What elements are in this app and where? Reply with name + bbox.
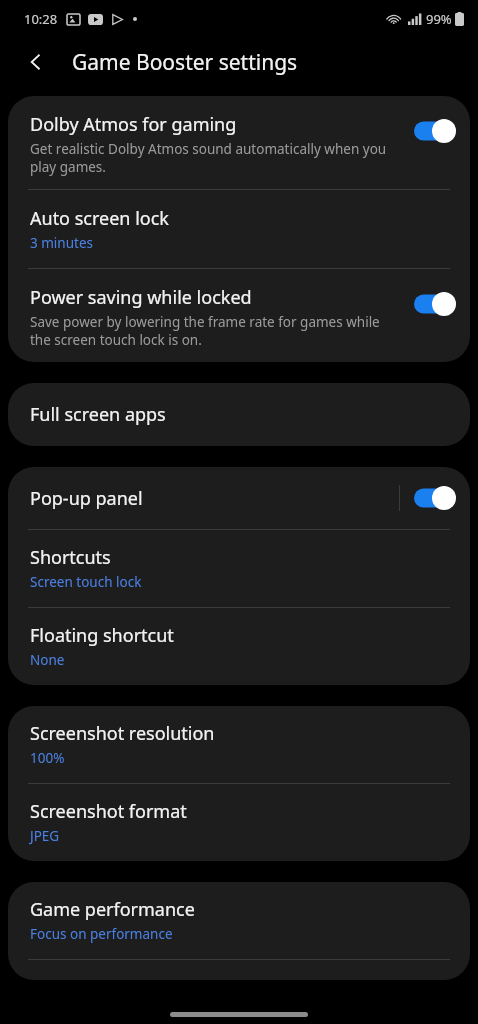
- button[interactable]: Pop-up panel: [8, 467, 470, 529]
- staticText: 100%: [30, 749, 65, 767]
- staticText: 10:28: [24, 10, 58, 28]
- button[interactable]: Game performance: [8, 882, 470, 959]
- button[interactable]: Power saving while locked: [8, 269, 470, 362]
- staticText: Save power by lowering the frame rate fo…: [30, 313, 400, 349]
- staticText: Game performance: [30, 897, 195, 922]
- staticText: None: [30, 651, 65, 669]
- staticText: Screenshot format: [30, 799, 187, 824]
- staticText: Pop-up panel: [30, 486, 143, 511]
- button[interactable]: Screenshot resolution: [8, 706, 470, 783]
- button[interactable]: Toggle setting: [414, 292, 456, 316]
- staticText: Full screen apps: [30, 402, 166, 427]
- button[interactable]: Full screen apps: [8, 383, 470, 446]
- button[interactable]: Screenshot format: [8, 784, 470, 861]
- staticText: JPEG: [30, 827, 60, 845]
- button[interactable]: Shortcuts: [8, 530, 470, 607]
- button[interactable]: Floating shortcut: [8, 608, 470, 685]
- staticText: Screenshot resolution: [30, 721, 215, 746]
- staticText: Screen touch lock: [30, 573, 142, 591]
- button[interactable]: Auto screen lock: [8, 190, 470, 268]
- button[interactable]: Dolby Atmos for gaming: [8, 96, 470, 189]
- staticText: Shortcuts: [30, 545, 111, 570]
- button[interactable]: Toggle setting: [414, 119, 456, 143]
- staticText: Auto screen lock: [30, 206, 169, 231]
- staticText: 99%: [426, 10, 452, 28]
- staticText: Focus on performance: [30, 925, 173, 943]
- button[interactable]: Back: [14, 40, 58, 84]
- staticText: Get realistic Dolby Atmos sound automati…: [30, 140, 400, 176]
- staticText: Power saving while locked: [30, 285, 252, 310]
- staticText: 3 minutes: [30, 234, 93, 252]
- staticText: Game Booster settings: [72, 48, 298, 77]
- staticText: Dolby Atmos for gaming: [30, 112, 237, 137]
- button[interactable]: Toggle setting: [414, 486, 456, 510]
- staticText: Floating shortcut: [30, 623, 174, 648]
